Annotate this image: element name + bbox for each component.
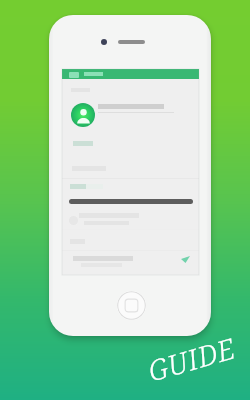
- button[interactable]: Send message: [181, 256, 190, 263]
- button[interactable]: Home: [117, 291, 146, 320]
- button[interactable]: [71, 103, 95, 127]
- staticText: GUIDE: [143, 328, 239, 390]
- button[interactable]: [62, 69, 199, 79]
